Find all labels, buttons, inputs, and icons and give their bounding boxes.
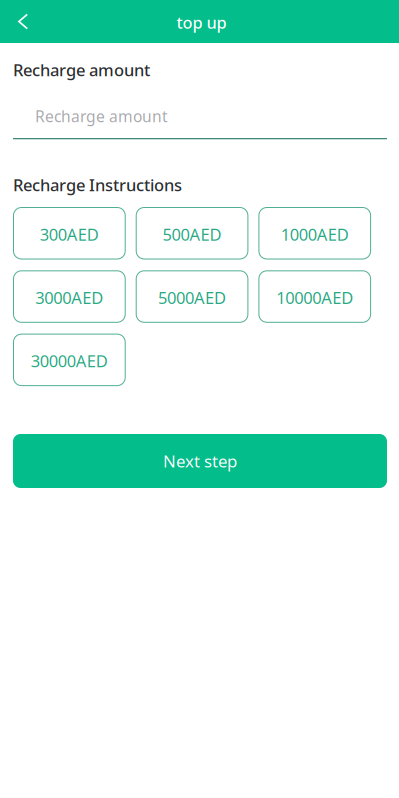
staticText: 3000AED (35, 286, 103, 309)
staticText: 1000AED (281, 223, 349, 245)
button[interactable]: 1000AED (259, 207, 371, 259)
staticText: 300AED (40, 223, 99, 245)
button[interactable]: 300AED (13, 207, 125, 259)
button[interactable]: Back (0, 0, 46, 43)
staticText: Recharge Instructions (13, 173, 182, 196)
staticText: top up (176, 11, 226, 34)
button[interactable]: 500AED (136, 207, 248, 259)
staticText: Recharge amount (13, 58, 150, 81)
button[interactable]: 30000AED (13, 334, 125, 386)
button[interactable]: 3000AED (13, 271, 125, 322)
button[interactable]: Next step (13, 434, 387, 488)
staticText: 30000AED (31, 350, 108, 372)
button[interactable]: 10000AED (259, 271, 371, 322)
staticText: Next step (163, 450, 237, 472)
staticText: 5000AED (158, 286, 226, 309)
staticText: 10000AED (276, 286, 353, 309)
staticText: Recharge amount (35, 105, 168, 127)
button[interactable]: 5000AED (136, 271, 248, 322)
staticText: 500AED (162, 223, 221, 245)
